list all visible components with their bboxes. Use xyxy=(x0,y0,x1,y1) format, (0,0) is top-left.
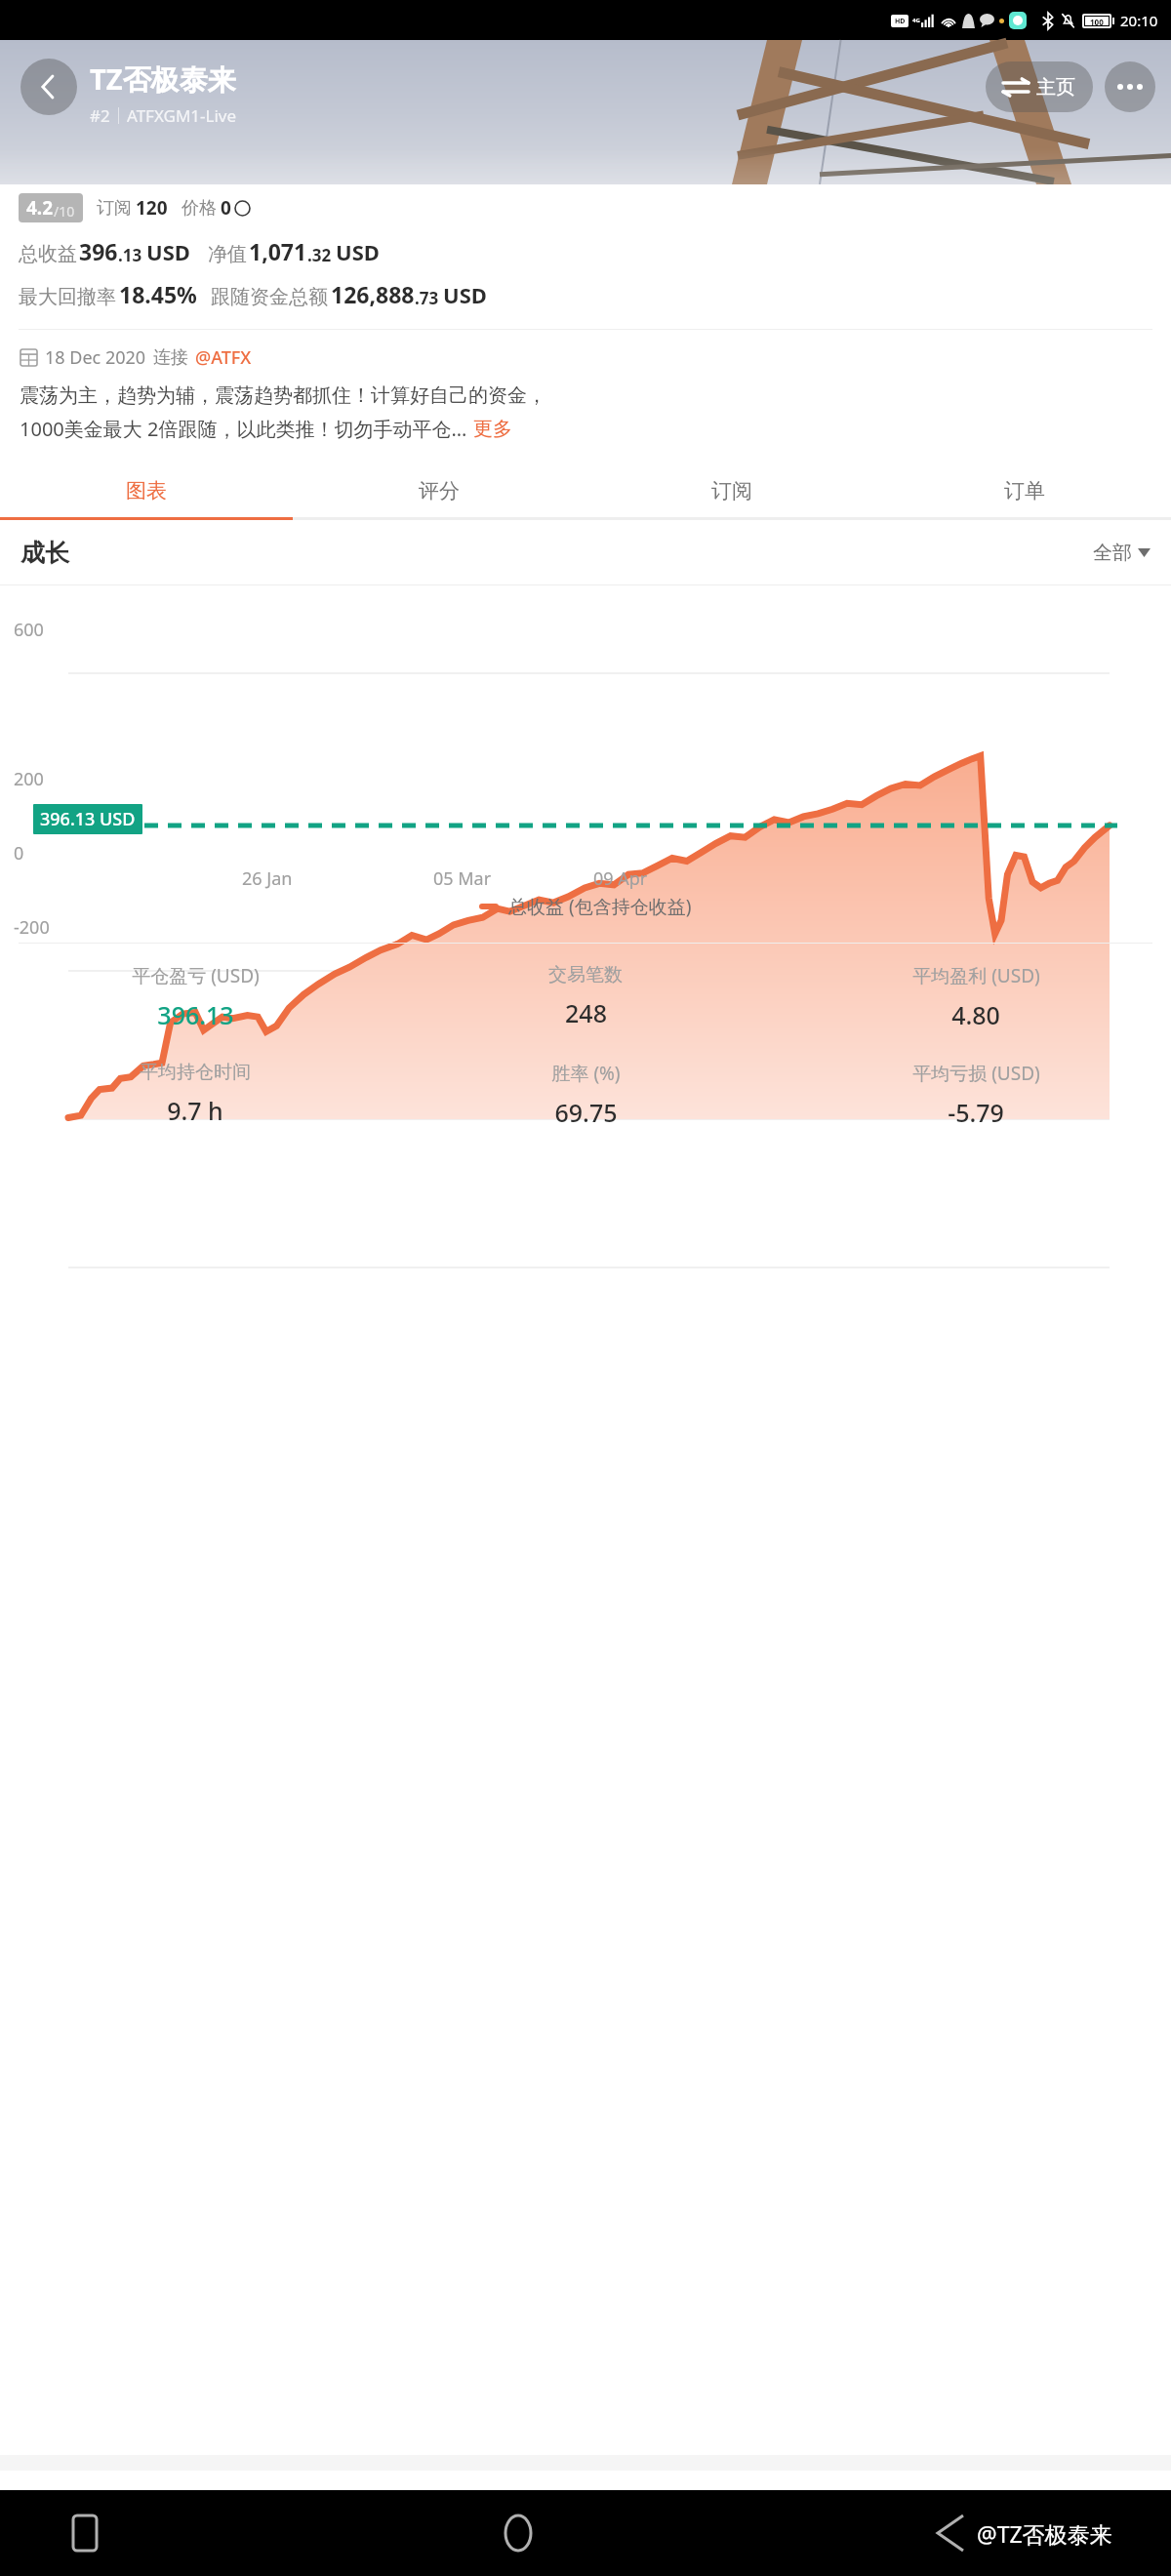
staticText: 价格 xyxy=(182,197,217,220)
staticText: 平均持仓时间 xyxy=(140,1061,251,1084)
button[interactable]: 全部 xyxy=(1093,541,1151,565)
staticText: 600 xyxy=(14,618,44,642)
button[interactable]: Back xyxy=(20,59,77,115)
staticText: 248 xyxy=(565,996,607,1029)
staticText: #2 xyxy=(90,104,110,127)
staticText: 4.2 xyxy=(26,195,54,221)
staticText: 成长 xyxy=(20,538,69,568)
staticText: @TZ否极泰来 xyxy=(977,2518,1112,2549)
staticText: 总收益 (包含持仓收益) xyxy=(508,894,692,919)
staticText: 最大回撤率 xyxy=(19,285,116,309)
staticText: 4.80 xyxy=(951,998,1000,1031)
staticText: 订阅 xyxy=(97,197,132,220)
staticText: 主页 xyxy=(1036,75,1075,100)
staticText: -200 xyxy=(14,915,50,940)
staticText: .73 xyxy=(415,287,439,309)
button[interactable]: @ATFX xyxy=(195,345,252,370)
staticText: 126,888 xyxy=(331,279,415,309)
staticText: 05 Mar xyxy=(433,866,492,891)
button[interactable]: 图表 xyxy=(0,463,293,517)
staticText: 0 xyxy=(14,841,24,865)
button[interactable]: Back xyxy=(924,2507,977,2559)
button[interactable]: 订阅 xyxy=(585,463,878,517)
staticText: ATFXGM1-Live xyxy=(127,104,237,127)
staticText: 18 Dec 2020 xyxy=(45,345,146,370)
staticText: 订单 xyxy=(1004,478,1045,503)
staticText: 396.13 xyxy=(157,998,234,1031)
staticText: 连接 xyxy=(153,346,188,369)
staticText: 1,071 xyxy=(249,236,307,266)
staticText: -5.79 xyxy=(948,1096,1004,1129)
staticText: /10 xyxy=(54,202,75,221)
staticText: 图表 xyxy=(126,478,167,503)
button[interactable]: 评分 xyxy=(293,463,585,517)
staticText: 396 xyxy=(79,236,118,266)
staticText: 69.75 xyxy=(554,1096,618,1129)
staticText: @ATFX xyxy=(195,345,252,370)
staticText: .13 xyxy=(118,244,142,266)
staticText: USD xyxy=(336,237,380,266)
staticText: 胜率 (%) xyxy=(551,1061,621,1086)
staticText: 平仓盈亏 (USD) xyxy=(132,963,260,988)
staticText: 更多 xyxy=(473,417,512,441)
staticText: 200 xyxy=(14,767,44,791)
button[interactable]: 订单 xyxy=(878,463,1171,517)
staticText: 18.45% xyxy=(119,279,197,309)
staticText: 100 xyxy=(1090,17,1104,25)
staticText: TZ否极泰来 xyxy=(90,60,236,99)
button[interactable]: 更多 xyxy=(473,417,512,441)
staticText: 396.13 USD xyxy=(40,807,136,831)
staticText: 1000美金最大 2倍跟随，以此类推！切勿手动平仓... xyxy=(20,416,467,442)
staticText: 震荡为主，趋势为辅，震荡趋势都抓住！计算好自己的资金， xyxy=(20,383,546,408)
staticText: 订阅 xyxy=(711,478,752,503)
staticText: 跟随资金总额 xyxy=(211,285,328,309)
button[interactable]: More options xyxy=(1105,61,1155,112)
staticText: USD xyxy=(146,237,190,266)
staticText: 总收益 xyxy=(19,242,77,266)
staticText: 09 Apr xyxy=(593,866,648,891)
staticText: 0 xyxy=(221,195,231,221)
staticText: 净值 xyxy=(208,242,247,266)
staticText: 平均盈利 (USD) xyxy=(912,963,1040,988)
staticText: 4G xyxy=(912,17,920,24)
staticText: 平均亏损 (USD) xyxy=(912,1061,1040,1086)
button[interactable]: 主页 xyxy=(986,61,1093,112)
staticText: 9.7 h xyxy=(167,1094,223,1127)
staticText: 全部 xyxy=(1093,541,1132,565)
staticText: HD xyxy=(895,17,906,26)
button[interactable]: Recents xyxy=(59,2507,111,2559)
staticText: 120 xyxy=(136,195,168,221)
staticText: USD xyxy=(443,280,487,309)
button[interactable]: Home xyxy=(492,2507,545,2559)
staticText: .32 xyxy=(307,244,332,266)
staticText: 评分 xyxy=(419,478,460,503)
staticText: 26 Jan xyxy=(242,866,293,891)
staticText: 20:10 xyxy=(1120,11,1158,30)
staticText: 交易笔数 xyxy=(548,963,623,986)
